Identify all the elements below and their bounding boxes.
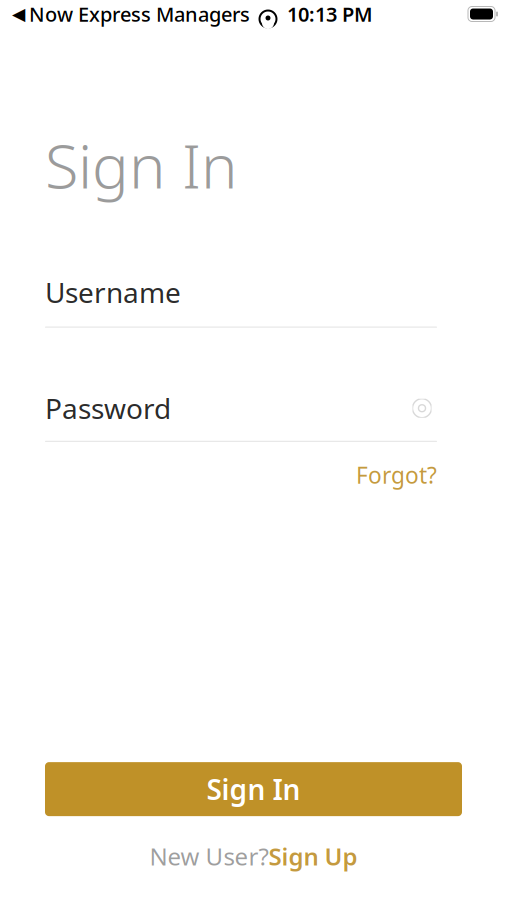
staticText: Password	[45, 390, 171, 427]
staticText: New User?	[149, 840, 268, 872]
staticText: 10:13 PM	[287, 1, 373, 27]
button[interactable]: Sign In	[45, 762, 462, 816]
staticText: Now Express Managers	[29, 1, 250, 27]
staticText: Username	[45, 273, 181, 311]
button[interactable]: Show password	[407, 396, 437, 420]
staticText: ◀	[12, 4, 25, 24]
staticText: Sign Up	[268, 840, 357, 872]
staticText: Sign In	[45, 124, 238, 205]
staticText: Forgot?	[356, 460, 437, 490]
button[interactable]: New User?	[0, 840, 507, 872]
button[interactable]: Forgot?	[356, 460, 437, 490]
staticText: Sign In	[206, 770, 300, 808]
